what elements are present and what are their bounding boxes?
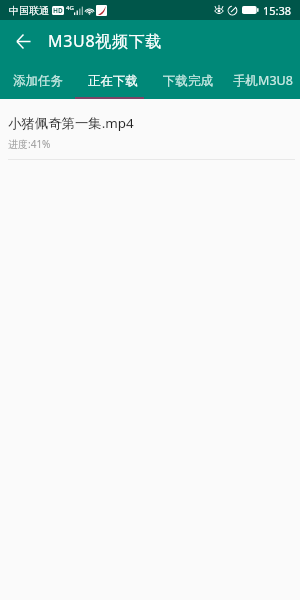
button[interactable]: 正在下载: [75, 62, 150, 99]
button[interactable]: Back: [10, 28, 36, 54]
staticText: 中国联通: [9, 4, 49, 17]
button[interactable]: 手机M3U8: [225, 62, 300, 99]
staticText: M3U8视频下载: [48, 30, 163, 52]
button[interactable]: 添加任务: [0, 62, 75, 99]
staticText: 手机M3U8: [233, 72, 293, 89]
staticText: HD: [53, 6, 63, 15]
staticText: 15:38: [263, 3, 292, 18]
staticText: 小猪佩奇第一集.mp4: [8, 114, 134, 132]
staticText: 4G: [66, 4, 74, 12]
button[interactable]: 小猪佩奇第一集.mp4: [0, 99, 300, 160]
button[interactable]: 下载完成: [150, 62, 225, 99]
staticText: 正在下载: [88, 73, 138, 89]
staticText: 下载完成: [163, 73, 213, 89]
staticText: 进度:41%: [8, 137, 51, 151]
staticText: 添加任务: [13, 73, 63, 89]
